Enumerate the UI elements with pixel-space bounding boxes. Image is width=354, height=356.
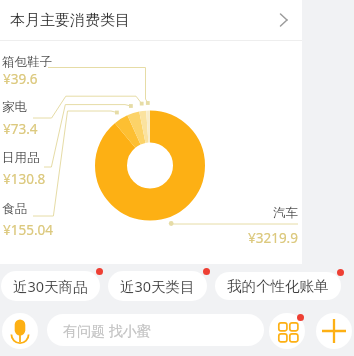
button[interactable]: 近30天类目	[108, 271, 207, 301]
button[interactable]: Apps	[269, 313, 305, 349]
staticText: 食品	[2, 201, 27, 217]
staticText: 日用品	[2, 150, 40, 166]
staticText: 近30天商品	[13, 276, 88, 296]
staticText: ¥3219.9	[248, 229, 298, 247]
staticText: 本月主要消费类目	[10, 11, 130, 30]
staticText: 箱包鞋子	[2, 54, 52, 70]
staticText: 汽车	[273, 205, 298, 221]
button[interactable]: 我的个性化账单	[215, 272, 341, 300]
staticText: 有问题 找小蜜	[63, 321, 151, 340]
button[interactable]: Add	[316, 313, 352, 349]
button[interactable]: Voice input	[2, 313, 38, 349]
staticText: ¥39.6	[3, 70, 38, 88]
staticText: ¥73.4	[3, 120, 38, 138]
staticText: 家电	[2, 99, 27, 115]
button[interactable]: 本月主要消费类目	[0, 0, 302, 40]
button[interactable]: 有问题 找小蜜	[47, 314, 264, 346]
staticText: 我的个性化账单	[227, 277, 329, 295]
button[interactable]: 近30天商品	[1, 271, 100, 301]
staticText: 近30天类目	[120, 276, 195, 296]
staticText: ¥155.04	[3, 221, 53, 239]
staticText: ¥130.8	[3, 170, 46, 188]
